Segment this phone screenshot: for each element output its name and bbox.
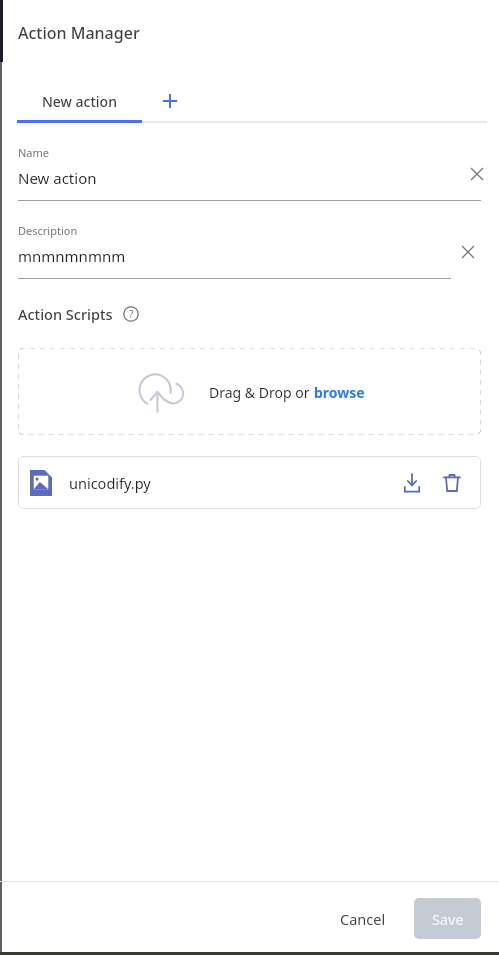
staticText: browse [314,383,365,402]
staticText: New action [18,168,97,188]
button[interactable]: Add action [142,79,197,123]
staticText: ? [129,307,134,321]
staticText: Action Manager [18,22,140,44]
button[interactable]: Clear Name [466,163,488,185]
staticText: Action Scripts [18,304,113,324]
button[interactable]: New action [17,79,142,123]
staticText: mnmnmnmnm [18,246,126,266]
button[interactable]: Clear Description [457,241,479,263]
staticText: New action [42,92,117,111]
button[interactable]: Delete [435,466,469,500]
staticText: Name [18,145,50,160]
button[interactable]: Download [395,466,429,500]
button[interactable]: Cancel [324,900,402,938]
staticText: Cancel [340,909,386,929]
button[interactable]: unicodify.py [18,456,481,509]
staticText: unicodify.py [69,473,151,493]
button[interactable]: Drag & Drop or [18,348,481,435]
button[interactable]: Help [121,304,141,324]
staticText: Description [18,223,78,238]
staticText: Save [432,909,464,929]
button[interactable]: browse [314,383,365,402]
button[interactable]: Save [414,898,481,939]
staticText: Drag & Drop or [209,383,314,402]
